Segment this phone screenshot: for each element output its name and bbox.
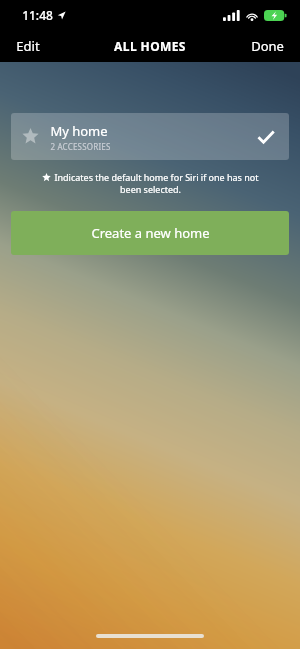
button[interactable]: Done xyxy=(237,31,300,61)
staticText: 2 ACCESSORIES xyxy=(50,141,111,152)
staticText: Edit xyxy=(16,37,40,55)
staticText: been selected. xyxy=(120,183,181,195)
button[interactable]: Create a new home xyxy=(11,211,289,255)
staticText: ALL HOMES xyxy=(114,38,186,54)
staticText: My home xyxy=(50,122,108,140)
staticText: Indicates the default home for Siri if o… xyxy=(54,171,259,183)
button[interactable]: My home xyxy=(11,113,289,160)
button[interactable]: Edit xyxy=(0,31,54,61)
other: Selected home xyxy=(257,128,275,146)
staticText: Create a new home xyxy=(91,224,210,242)
staticText: Done xyxy=(251,37,284,55)
staticText: 11:48 xyxy=(22,7,53,23)
